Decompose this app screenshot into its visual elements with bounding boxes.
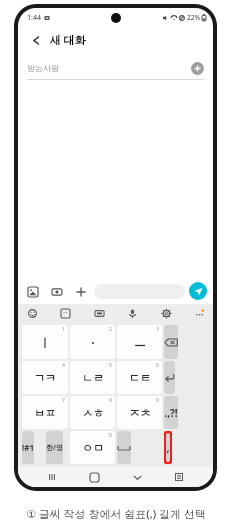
- button[interactable]: Backspace: [164, 325, 178, 359]
- button[interactable]: GIF: [92, 306, 106, 320]
- button[interactable]: Voice input: [125, 306, 139, 320]
- staticText: 3: [156, 326, 159, 333]
- staticText: 6: [156, 362, 159, 369]
- button[interactable]: More: [192, 306, 206, 320]
- button[interactable]: Stickers: [58, 306, 72, 320]
- button[interactable]: !#1: [22, 431, 34, 464]
- button[interactable]: Gallery: [24, 283, 41, 300]
- staticText: ㄱㅋ: [34, 371, 56, 385]
- button[interactable]: ㄴㄹ: [70, 361, 115, 394]
- button[interactable]: More options: [72, 283, 89, 300]
- button[interactable]: ㅣ: [22, 325, 68, 359]
- staticText: 0: [109, 432, 112, 439]
- button[interactable]: Settings: [159, 306, 173, 320]
- staticText: 2: [109, 326, 112, 333]
- staticText: 1:44: [27, 13, 41, 23]
- staticText: ㅡ: [134, 335, 146, 350]
- button[interactable]: ㅡ: [117, 325, 162, 359]
- staticText: 7: [62, 397, 65, 404]
- button[interactable]: ㄱㅋ: [22, 361, 68, 394]
- staticText: 한/영: [46, 443, 63, 453]
- staticText: 8: [109, 397, 112, 404]
- button[interactable]: 한/영: [46, 431, 63, 464]
- staticText: .,?!: [164, 406, 178, 420]
- staticText: ·: [91, 334, 95, 350]
- button[interactable]: Back: [128, 468, 146, 486]
- button[interactable]: ㅇㅁ: [70, 431, 115, 464]
- button[interactable]: Send: [189, 282, 207, 300]
- button[interactable]: ,: [166, 433, 170, 462]
- staticText: ㅂㅍ: [34, 406, 56, 420]
- staticText: 1: [62, 326, 65, 333]
- staticText: ㄷㅌ: [129, 371, 151, 385]
- button[interactable]: ·: [70, 325, 115, 359]
- button[interactable]: ㄷㅌ: [117, 361, 162, 394]
- staticText: ,: [166, 440, 170, 455]
- staticText: 22%: [187, 13, 200, 22]
- staticText: ㅈㅊ: [129, 406, 151, 420]
- other: Backspace: [164, 338, 178, 347]
- staticText: ㅇㅁ: [82, 441, 104, 455]
- staticText: ㅅㅎ: [82, 406, 104, 420]
- staticText: 5: [109, 362, 112, 369]
- button[interactable]: Back: [27, 31, 45, 49]
- button[interactable]: Camera: [48, 283, 65, 300]
- button[interactable]: ㅂㅍ: [22, 396, 68, 429]
- other: Space: [117, 445, 131, 451]
- button[interactable]: ㅅㅎ: [70, 396, 115, 429]
- button[interactable]: Add recipient: [191, 62, 204, 75]
- button[interactable]: Home: [85, 468, 103, 486]
- staticText: ① 글씨 작성 창에서 쉼표(,) 길게 선택: [26, 506, 206, 521]
- button[interactable]: Emoji: [25, 306, 39, 320]
- button[interactable]: Keyboard: [170, 468, 188, 486]
- button[interactable]: Recents: [43, 468, 61, 486]
- staticText: !#1: [22, 442, 34, 453]
- button[interactable]: Enter: [164, 361, 175, 394]
- staticText: ㄴㄹ: [82, 371, 104, 385]
- staticText: 4: [62, 362, 65, 369]
- button[interactable]: ㅈㅊ: [117, 396, 162, 429]
- staticText: 9: [156, 397, 159, 404]
- staticText: 새 대화: [50, 32, 86, 47]
- button[interactable]: .,?!: [164, 396, 178, 429]
- staticText: ㅣ: [39, 335, 51, 350]
- staticText: 받는사람: [27, 63, 59, 73]
- button[interactable]: Space: [117, 431, 131, 464]
- other: Enter: [164, 372, 175, 383]
